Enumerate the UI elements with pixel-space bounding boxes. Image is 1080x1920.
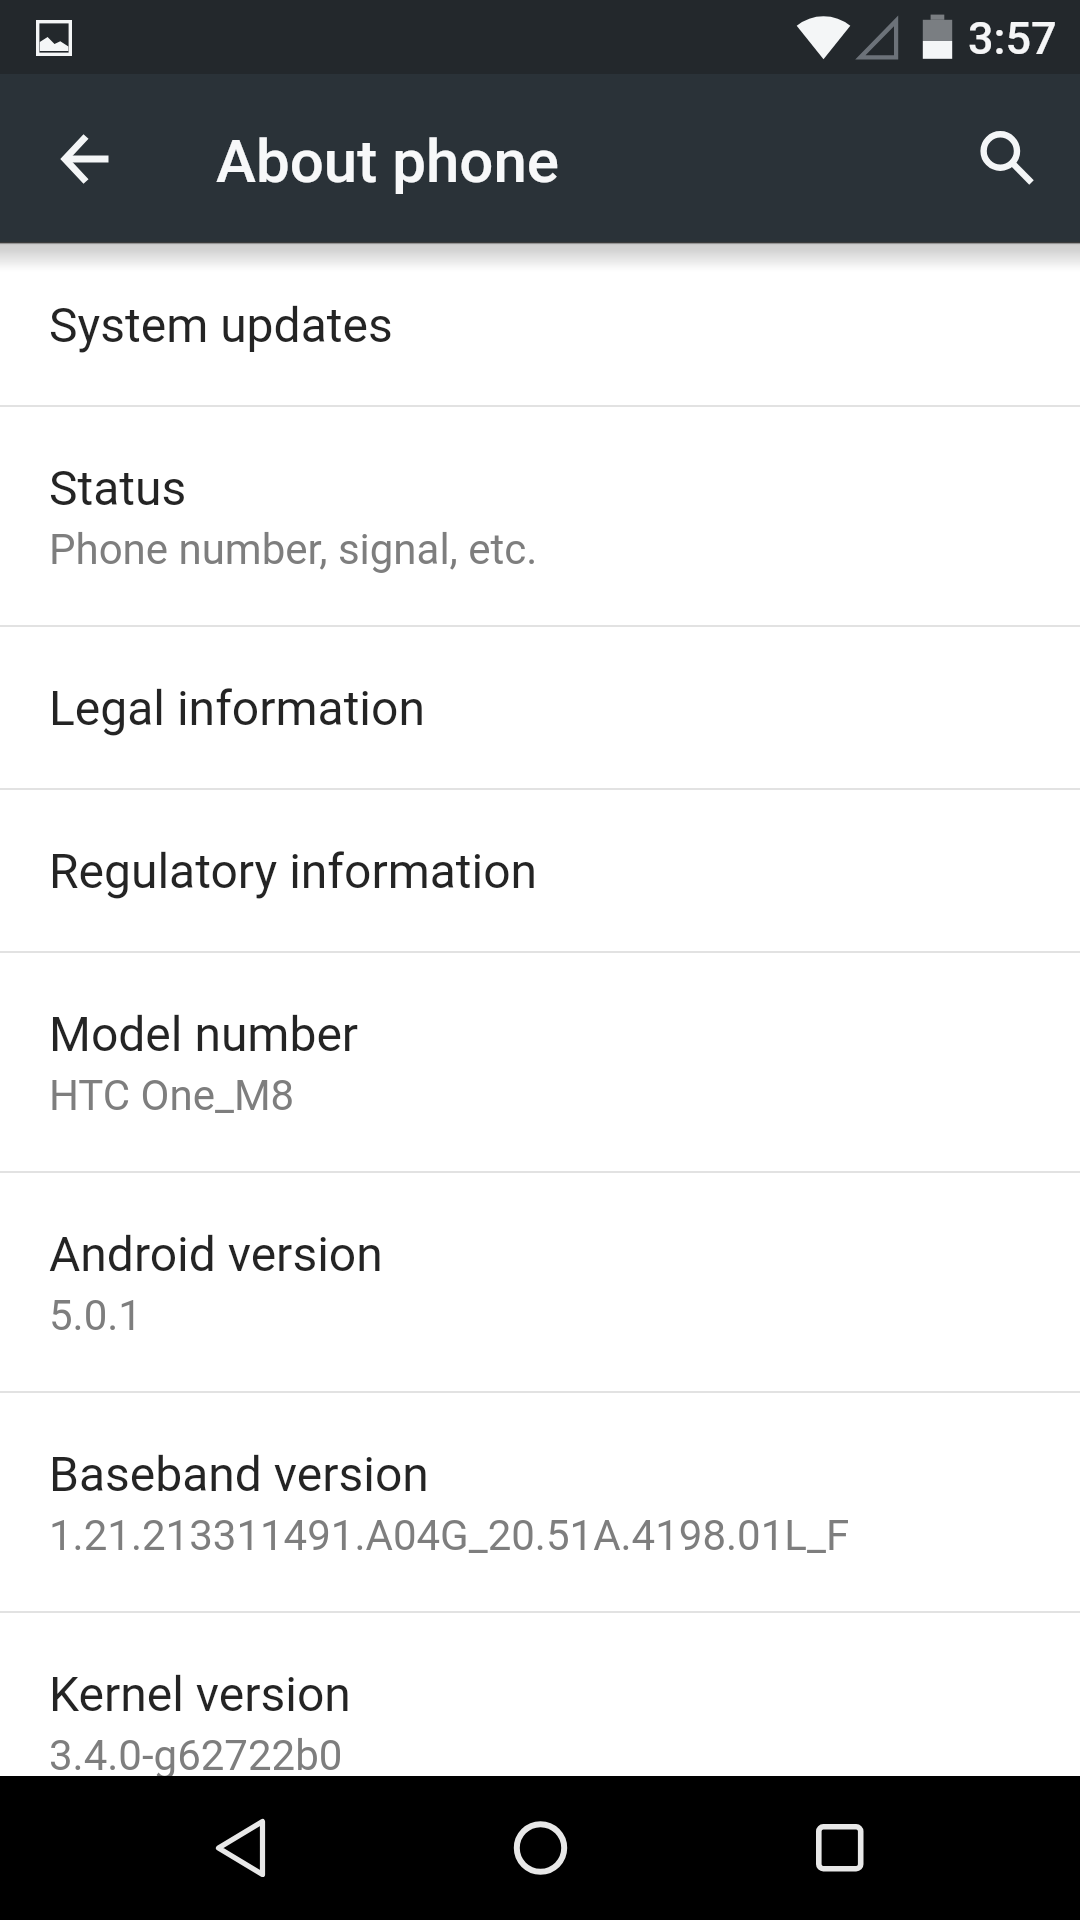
staticText: About phone [216, 126, 559, 196]
staticText: Regulatory information [49, 843, 538, 899]
staticText: 1.21.213311491.A04G_20.51A.4198.01L_F [49, 1511, 850, 1560]
button[interactable]: Recent apps [776, 1784, 904, 1912]
staticText: 3.4.0-g62722b0 [49, 1731, 343, 1780]
button[interactable]: Model number [0, 953, 1080, 1171]
staticText: Kernel version [49, 1666, 351, 1722]
button[interactable]: Home [476, 1784, 604, 1912]
button[interactable]: Back [176, 1784, 304, 1912]
button[interactable]: Navigate up [16, 94, 144, 222]
staticText: HTC One_M8 [49, 1071, 295, 1120]
button[interactable]: Regulatory information [0, 790, 1080, 951]
staticText: Model number [49, 1006, 359, 1062]
staticText: 5.0.1 [49, 1291, 142, 1340]
staticText: Status [49, 460, 187, 516]
button[interactable]: Legal information [0, 627, 1080, 788]
staticText: System updates [49, 297, 393, 353]
staticText: Baseband version [49, 1446, 429, 1502]
button[interactable]: Baseband version [0, 1393, 1080, 1611]
button[interactable]: Kernel version [0, 1613, 1080, 1776]
button[interactable]: Search [936, 94, 1064, 222]
button[interactable]: Android version [0, 1173, 1080, 1391]
button[interactable]: Status [0, 407, 1080, 625]
staticText: Android version [49, 1226, 383, 1282]
staticText: Legal information [49, 680, 425, 736]
button[interactable]: System updates [0, 243, 1080, 405]
staticText: 3:57 [968, 12, 1057, 65]
staticText: Phone number, signal, etc. [49, 525, 538, 574]
